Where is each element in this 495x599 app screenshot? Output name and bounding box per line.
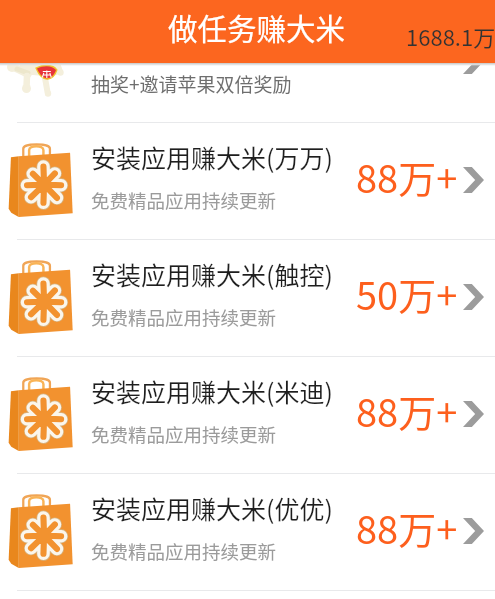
staticText: 88万+: [356, 383, 458, 438]
staticText: 安装应用赚大米(触控): [91, 256, 333, 292]
staticText: 88万+: [356, 500, 458, 555]
button[interactable]: 安装应用赚大米(触控): [0, 240, 495, 357]
staticText: 免费精品应用持续更新: [91, 304, 277, 331]
staticText: 安装应用赚大米(万万): [91, 139, 333, 175]
other: Open: [463, 284, 484, 310]
staticText: 做任务赚大米: [168, 6, 346, 49]
button[interactable]: 抽奖+邀请苹果双倍奖励: [0, 0, 495, 123]
staticText: 1688.1万: [406, 20, 495, 52]
button[interactable]: 安装应用赚大米(优优): [0, 474, 495, 591]
staticText: 免费精品应用持续更新: [91, 421, 277, 448]
staticText: 免费精品应用持续更新: [91, 187, 277, 214]
other: Open: [463, 518, 484, 544]
staticText: 安装应用赚大米(优优): [91, 490, 333, 526]
other: Open: [463, 167, 484, 193]
other: Open: [463, 48, 484, 74]
staticText: 88万+: [356, 149, 458, 204]
staticText: 50万+: [356, 266, 458, 321]
staticText: 抽奖+邀请苹果双倍奖励: [91, 70, 292, 98]
staticText: 免费精品应用持续更新: [91, 538, 277, 565]
other: Open: [463, 401, 484, 427]
button[interactable]: 安装应用赚大米(米迪): [0, 357, 495, 474]
staticText: 安装应用赚大米(米迪): [91, 373, 333, 409]
button[interactable]: 安装应用赚大米(万万): [0, 123, 495, 240]
